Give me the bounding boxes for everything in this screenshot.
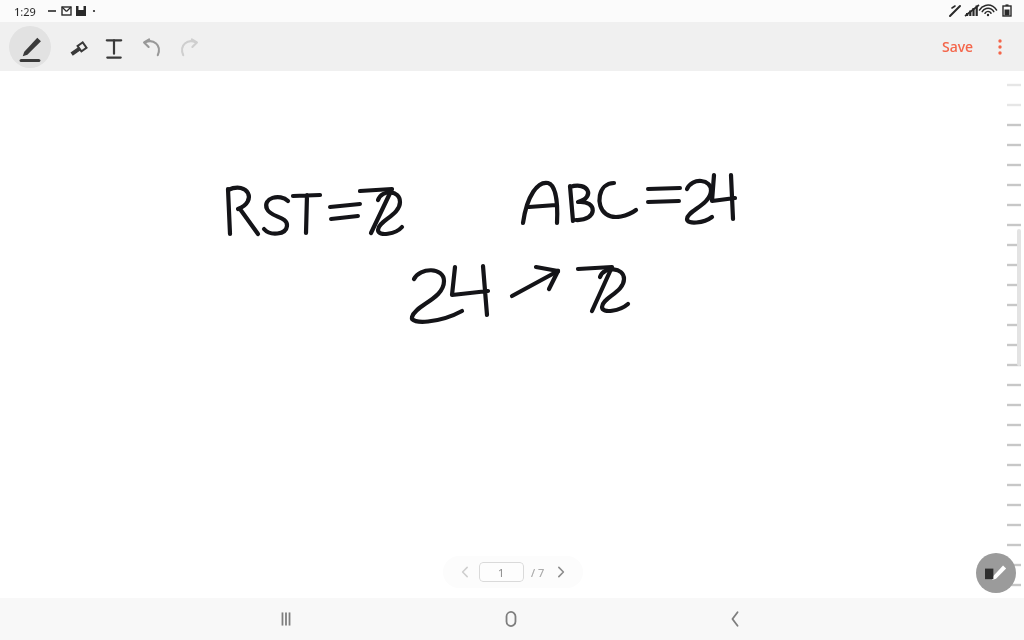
button[interactable]: Next page [549,560,573,584]
button[interactable]: More options [984,31,1016,63]
button[interactable]: Recents [264,598,308,640]
button[interactable]: Back [713,598,757,640]
button[interactable]: Previous page [453,560,477,584]
button[interactable]: Home [489,598,533,640]
button[interactable]: 1 [479,562,524,582]
button[interactable]: Undo [133,28,171,66]
button[interactable]: Previous page [443,556,583,588]
staticText: 1:29 [14,4,36,19]
button[interactable]: Save [938,31,978,62]
button[interactable]: Eraser [57,28,95,66]
staticText: / 7 [531,565,545,580]
button[interactable]: Text [95,28,133,66]
button[interactable]: Pen [9,26,51,68]
staticText: 1 [498,565,505,580]
button[interactable]: Write [976,553,1016,593]
button[interactable]: Redo [170,28,208,66]
